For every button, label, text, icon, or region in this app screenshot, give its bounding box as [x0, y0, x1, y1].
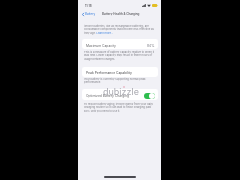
staticText: Battery: [85, 12, 96, 16]
staticText: Your battery is currently supporting nor…: [84, 77, 155, 84]
staticText: Optimized Battery Charging: [86, 94, 129, 98]
button[interactable]: Peak Performance Capability: [82, 67, 158, 77]
staticText: Peak Performance Capability: [86, 71, 132, 75]
button[interactable]: Optimized Battery Charging: [82, 89, 158, 100]
staticText: To reduce battery aging, iPhone learns f…: [84, 102, 155, 113]
staticText: This is a measure of battery capacity re…: [84, 50, 155, 61]
staticText: 84%: [147, 44, 155, 48]
staticText: iPhone batteries, like all rechargeable …: [84, 24, 155, 35]
button[interactable]: Battery: [81, 12, 97, 16]
button[interactable]: Maximum Capacity: [82, 39, 158, 49]
staticText: dubizzle: [103, 86, 139, 97]
staticText: 11:18: [85, 4, 92, 8]
button[interactable]: Optimized Battery Charging, on: [144, 93, 155, 99]
staticText: Battery Health & Charging: [102, 12, 140, 16]
staticText: Maximum Capacity: [86, 44, 116, 48]
